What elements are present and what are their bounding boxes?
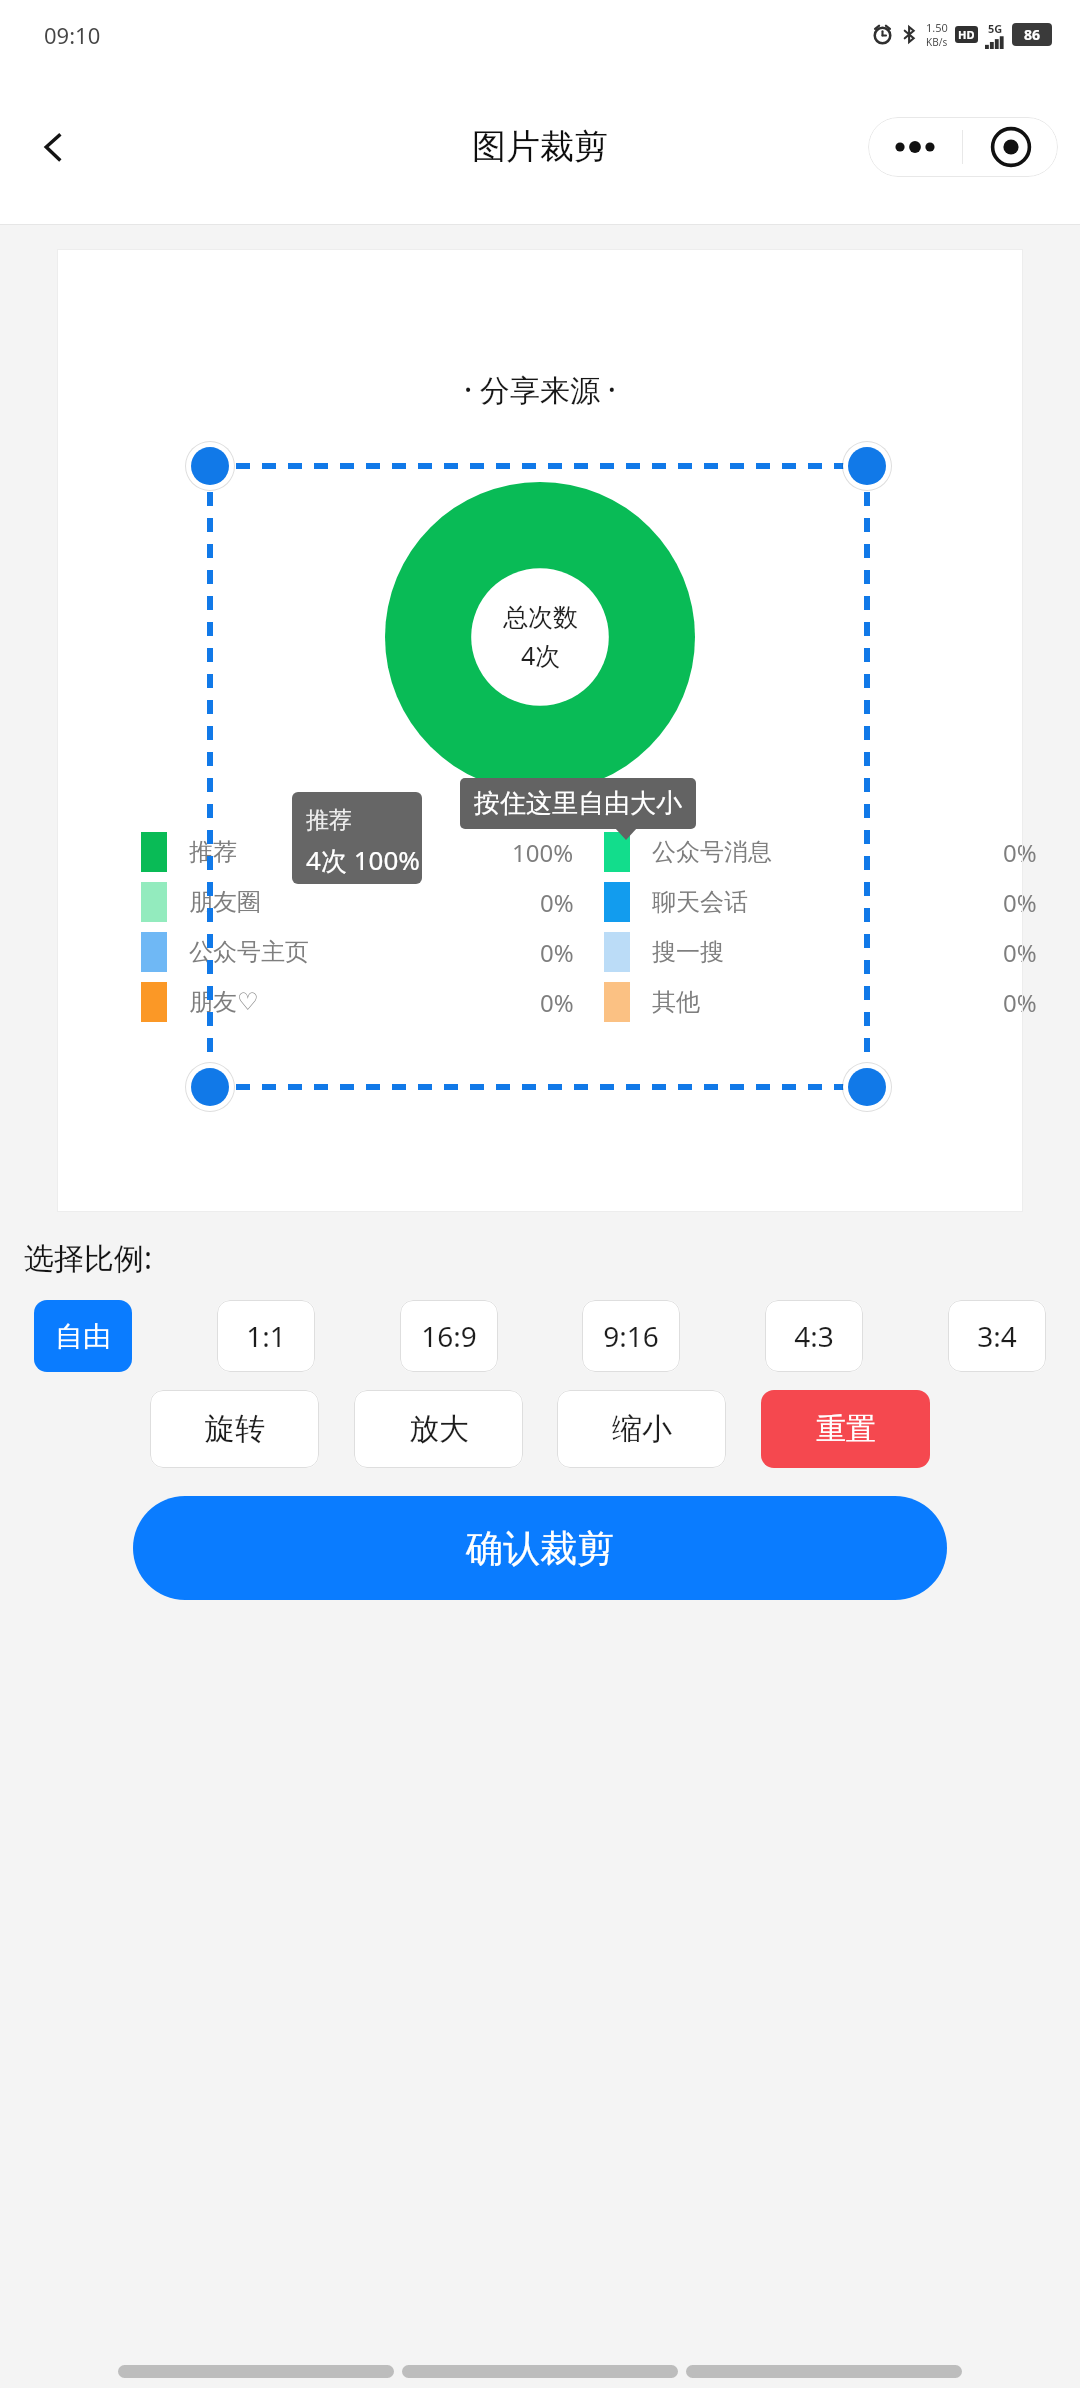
staticText: 4次 (521, 638, 561, 672)
button[interactable]: 公众号消息 (604, 832, 1067, 872)
staticText: 按住这里自由大小 (474, 787, 682, 820)
staticText: 5G (988, 21, 1003, 36)
staticText: 0% (1003, 886, 1037, 919)
staticText: 总次数 (503, 602, 578, 633)
button[interactable]: 1:1 (217, 1300, 315, 1372)
button[interactable]: Close (963, 117, 1058, 177)
staticText: 100% (512, 836, 574, 869)
button[interactable]: 旋转 (150, 1390, 319, 1468)
staticText: 公众号消息 (652, 837, 772, 867)
staticText: · 分享来源 · (464, 369, 616, 410)
staticText: 搜一搜 (652, 937, 724, 967)
staticText: 旋转 (205, 1410, 265, 1448)
staticText: 推荐 (189, 837, 237, 867)
staticText: 4:3 (794, 1317, 834, 1355)
staticText: 选择比例: (24, 1237, 153, 1278)
staticText: 0% (540, 886, 574, 919)
button[interactable]: 公众号主页 (141, 932, 604, 972)
staticText: 朋友圈 (189, 887, 261, 917)
button[interactable]: 朋友圈 (141, 882, 604, 922)
button[interactable]: 放大 (354, 1390, 523, 1468)
button[interactable]: 9:16 (582, 1300, 680, 1372)
staticText: 其他 (652, 987, 700, 1017)
staticText: 推荐 (306, 806, 352, 835)
button[interactable]: 自由 (34, 1300, 132, 1372)
staticText: 86 (1024, 25, 1041, 44)
staticText: 0% (1003, 836, 1037, 869)
staticText: 聊天会话 (652, 887, 748, 917)
button[interactable]: 4:3 (765, 1300, 863, 1372)
staticText: 缩小 (612, 1410, 672, 1448)
button[interactable]: 其他 (604, 982, 1067, 1022)
staticText: 3:4 (977, 1317, 1017, 1355)
button[interactable]: 搜一搜 (604, 932, 1067, 972)
staticText: 0% (1003, 986, 1037, 1019)
button[interactable]: More (868, 117, 962, 177)
button[interactable]: Back (22, 116, 84, 178)
staticText: 9:16 (603, 1317, 659, 1355)
button[interactable]: 朋友♡ (141, 982, 604, 1022)
staticText: 自由 (55, 1319, 111, 1354)
button[interactable]: 确认裁剪 (133, 1496, 947, 1600)
button[interactable]: 重置 (761, 1390, 930, 1468)
staticText: 图片裁剪 (472, 125, 608, 168)
staticText: 1.50 (926, 20, 948, 35)
button[interactable]: 16:9 (400, 1300, 498, 1372)
staticText: 确认裁剪 (466, 1525, 614, 1572)
staticText: 朋友♡ (189, 987, 259, 1017)
staticText: 1:1 (246, 1317, 286, 1355)
button[interactable]: 3:4 (948, 1300, 1046, 1372)
staticText: 0% (540, 936, 574, 969)
staticText: 16:9 (421, 1317, 477, 1355)
staticText: HD (958, 27, 975, 42)
button[interactable]: 推荐 (141, 832, 604, 872)
staticText: 0% (540, 986, 574, 1019)
staticText: 09:10 (44, 20, 101, 50)
staticText: 0% (1003, 936, 1037, 969)
staticText: 重置 (816, 1410, 876, 1448)
staticText: 4次 100% (306, 842, 420, 878)
staticText: 放大 (409, 1410, 469, 1448)
button[interactable]: 聊天会话 (604, 882, 1067, 922)
staticText: 公众号主页 (189, 937, 309, 967)
button[interactable]: 缩小 (557, 1390, 726, 1468)
staticText: KB/s (926, 35, 948, 49)
